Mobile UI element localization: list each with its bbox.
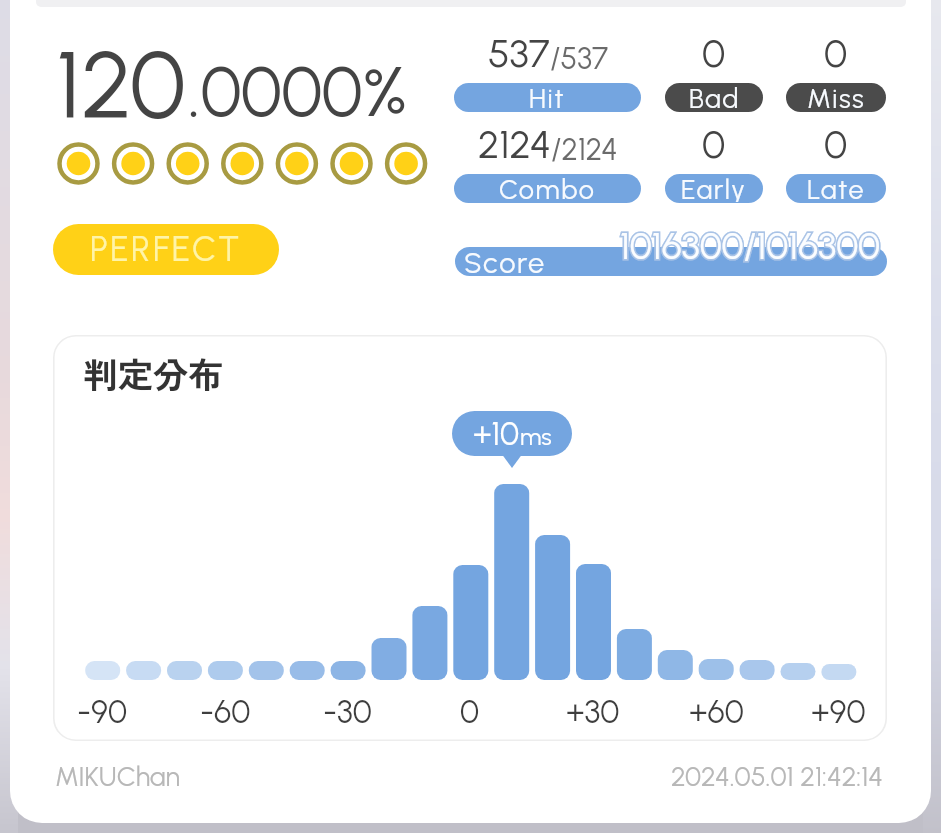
button[interactable]: Early [665, 174, 763, 203]
button[interactable]: Miss [786, 83, 886, 112]
staticText: 0 [824, 121, 848, 168]
staticText: /2124 [551, 131, 618, 167]
staticText: 0 [824, 30, 848, 77]
button[interactable] [455, 247, 887, 276]
staticText: -60 [200, 693, 251, 731]
staticText: Score [464, 245, 546, 280]
staticText: 120 [56, 28, 186, 141]
staticText: MIKUChan [55, 760, 180, 792]
staticText: PERFECT [90, 229, 242, 270]
staticText: 0 [702, 121, 726, 168]
button[interactable]: Bad [665, 83, 763, 112]
button[interactable]: Late [786, 174, 886, 203]
staticText: -90 [77, 693, 127, 731]
staticText: /537 [550, 40, 608, 76]
staticText: Bad [689, 83, 740, 111]
staticText: 判定分布 [83, 347, 224, 398]
staticText: 1016300/1016300 [620, 224, 880, 268]
staticText: Late [807, 174, 866, 202]
staticText: +30 [566, 693, 620, 731]
staticText: 2124 [478, 121, 551, 168]
staticText: 1016300/1016300 [620, 224, 880, 268]
staticText: ms [520, 422, 552, 451]
staticText: 537 [488, 30, 550, 77]
staticText: .0000% [188, 50, 407, 133]
staticText: Hit [529, 83, 566, 111]
staticText: +60 [689, 693, 744, 731]
staticText: Miss [807, 83, 866, 111]
button[interactable]: PERFECT [53, 224, 279, 275]
button[interactable]: Hit [454, 83, 641, 112]
staticText: Early [681, 174, 747, 202]
staticText: -30 [323, 693, 372, 731]
staticText: +90 [811, 693, 866, 731]
staticText: 2024.05.01 21:42:14 [671, 760, 884, 792]
staticText: Combo [499, 174, 596, 202]
staticText: 0 [460, 693, 480, 731]
staticText: 0 [702, 30, 726, 77]
staticText: +10 [473, 415, 520, 453]
button[interactable]: Combo [454, 174, 641, 203]
